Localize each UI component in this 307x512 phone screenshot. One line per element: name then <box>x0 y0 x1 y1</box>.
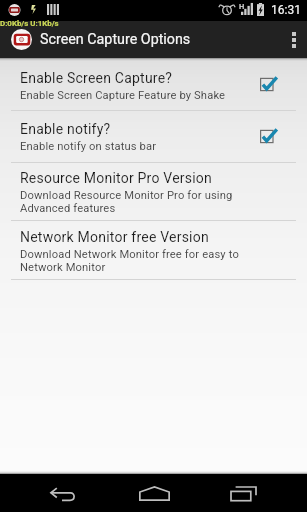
staticText: Screen Capture Options <box>40 31 191 48</box>
staticText: D:0Kb/s U:1Kb/s <box>0 19 59 28</box>
button[interactable]: Home <box>113 474 195 512</box>
button[interactable]: Enable Screen Capture? <box>0 58 307 110</box>
staticText: Enable Screen Capture Feature by Shake <box>20 89 226 102</box>
staticText: Resource Monitor Pro Version <box>20 170 212 186</box>
button[interactable]: Network Monitor free Version <box>0 221 307 279</box>
staticText: Download Network Monitor free for easy t… <box>20 248 239 261</box>
staticText: 16:31 <box>271 3 301 17</box>
staticText: Network Monitor free Version <box>20 229 209 245</box>
staticText: Enable notify? <box>20 121 111 137</box>
staticText: Network Monitor <box>20 261 106 274</box>
button[interactable]: Recents <box>202 474 284 512</box>
staticText: Enable notify on status bar <box>20 140 157 153</box>
button[interactable]: Enable notify? <box>0 111 307 162</box>
staticText: Advanced features <box>20 202 116 215</box>
staticText: Enable Screen Capture? <box>20 70 173 86</box>
button[interactable]: Back <box>12 474 114 512</box>
button[interactable]: More options <box>281 21 307 58</box>
button[interactable]: Resource Monitor Pro Version <box>0 163 307 220</box>
staticText: Download Resource Monitor Pro for using <box>20 189 233 202</box>
staticText: H <box>239 2 245 11</box>
